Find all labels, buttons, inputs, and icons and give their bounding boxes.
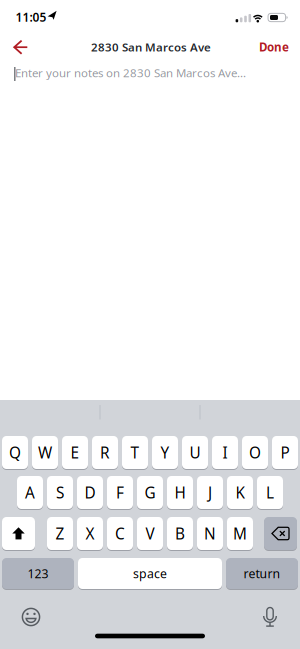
button[interactable]: Done [259, 39, 289, 55]
staticText: S [56, 482, 64, 503]
button[interactable]: P [272, 435, 298, 469]
staticText: Done [259, 39, 289, 55]
staticText: Y [160, 442, 169, 463]
staticText: U [189, 442, 200, 463]
staticText: return [243, 565, 280, 582]
button[interactable]: N [197, 516, 223, 550]
button[interactable]: Back [4, 32, 36, 62]
button[interactable]: J [197, 475, 223, 509]
staticText: G [144, 482, 155, 503]
staticText: V [145, 523, 154, 544]
staticText: N [204, 523, 216, 544]
button[interactable]: S [47, 475, 73, 509]
staticText: T [130, 442, 139, 463]
staticText: E [70, 442, 79, 463]
button[interactable]: Enter your notes on 2830 San Marcos Ave [0, 60, 300, 400]
button[interactable]: Y [152, 435, 178, 469]
staticText: B [175, 523, 185, 544]
staticText: I [222, 442, 227, 463]
staticText: Q [9, 442, 21, 463]
button[interactable]: D [77, 475, 103, 509]
button[interactable]: T [122, 435, 148, 469]
staticText: Enter your notes on 2830 San Marcos Ave.… [15, 65, 246, 81]
staticText: 123 [27, 565, 48, 582]
button[interactable]: E [62, 435, 88, 469]
staticText: 2830 San Marcos Ave [91, 39, 211, 55]
button[interactable]: L [257, 475, 283, 509]
button[interactable]: C [107, 516, 133, 550]
staticText: K [235, 482, 244, 503]
staticText: L [266, 482, 274, 503]
button[interactable]: Shift [2, 516, 35, 550]
staticText: Z [55, 523, 64, 544]
staticText: M [233, 523, 247, 544]
button[interactable]: V [137, 516, 163, 550]
button[interactable]: R [92, 435, 118, 469]
button[interactable]: X [77, 516, 103, 550]
staticText: A [25, 482, 35, 503]
button[interactable]: M [227, 516, 253, 550]
button[interactable]: Emoji [19, 605, 43, 629]
staticText: C [115, 523, 125, 544]
button[interactable]: Dictate [259, 605, 281, 627]
button[interactable]: B [167, 516, 193, 550]
staticText: R [100, 442, 110, 463]
button[interactable]: return [226, 557, 298, 589]
button[interactable]: O [242, 435, 268, 469]
button[interactable]: K [227, 475, 253, 509]
button[interactable]: Delete [264, 516, 297, 550]
button[interactable]: U [182, 435, 208, 469]
staticText: W [38, 442, 52, 463]
button[interactable]: space [78, 557, 222, 589]
button[interactable]: I [212, 435, 238, 469]
button[interactable]: G [137, 475, 163, 509]
staticText: space [133, 565, 167, 582]
button[interactable]: H [167, 475, 193, 509]
staticText: F [116, 482, 124, 503]
button[interactable]: 123 [2, 557, 74, 589]
button[interactable]: W [32, 435, 58, 469]
button[interactable]: Z [47, 516, 73, 550]
staticText: D [84, 482, 95, 503]
button[interactable]: A [17, 475, 43, 509]
staticText: P [280, 442, 289, 463]
staticText: X [85, 523, 94, 544]
staticText: J [208, 482, 212, 503]
button[interactable]: F [107, 475, 133, 509]
staticText: O [249, 442, 261, 463]
button[interactable]: Q [2, 435, 28, 469]
staticText: H [174, 482, 185, 503]
staticText: 11:05 [15, 9, 46, 25]
